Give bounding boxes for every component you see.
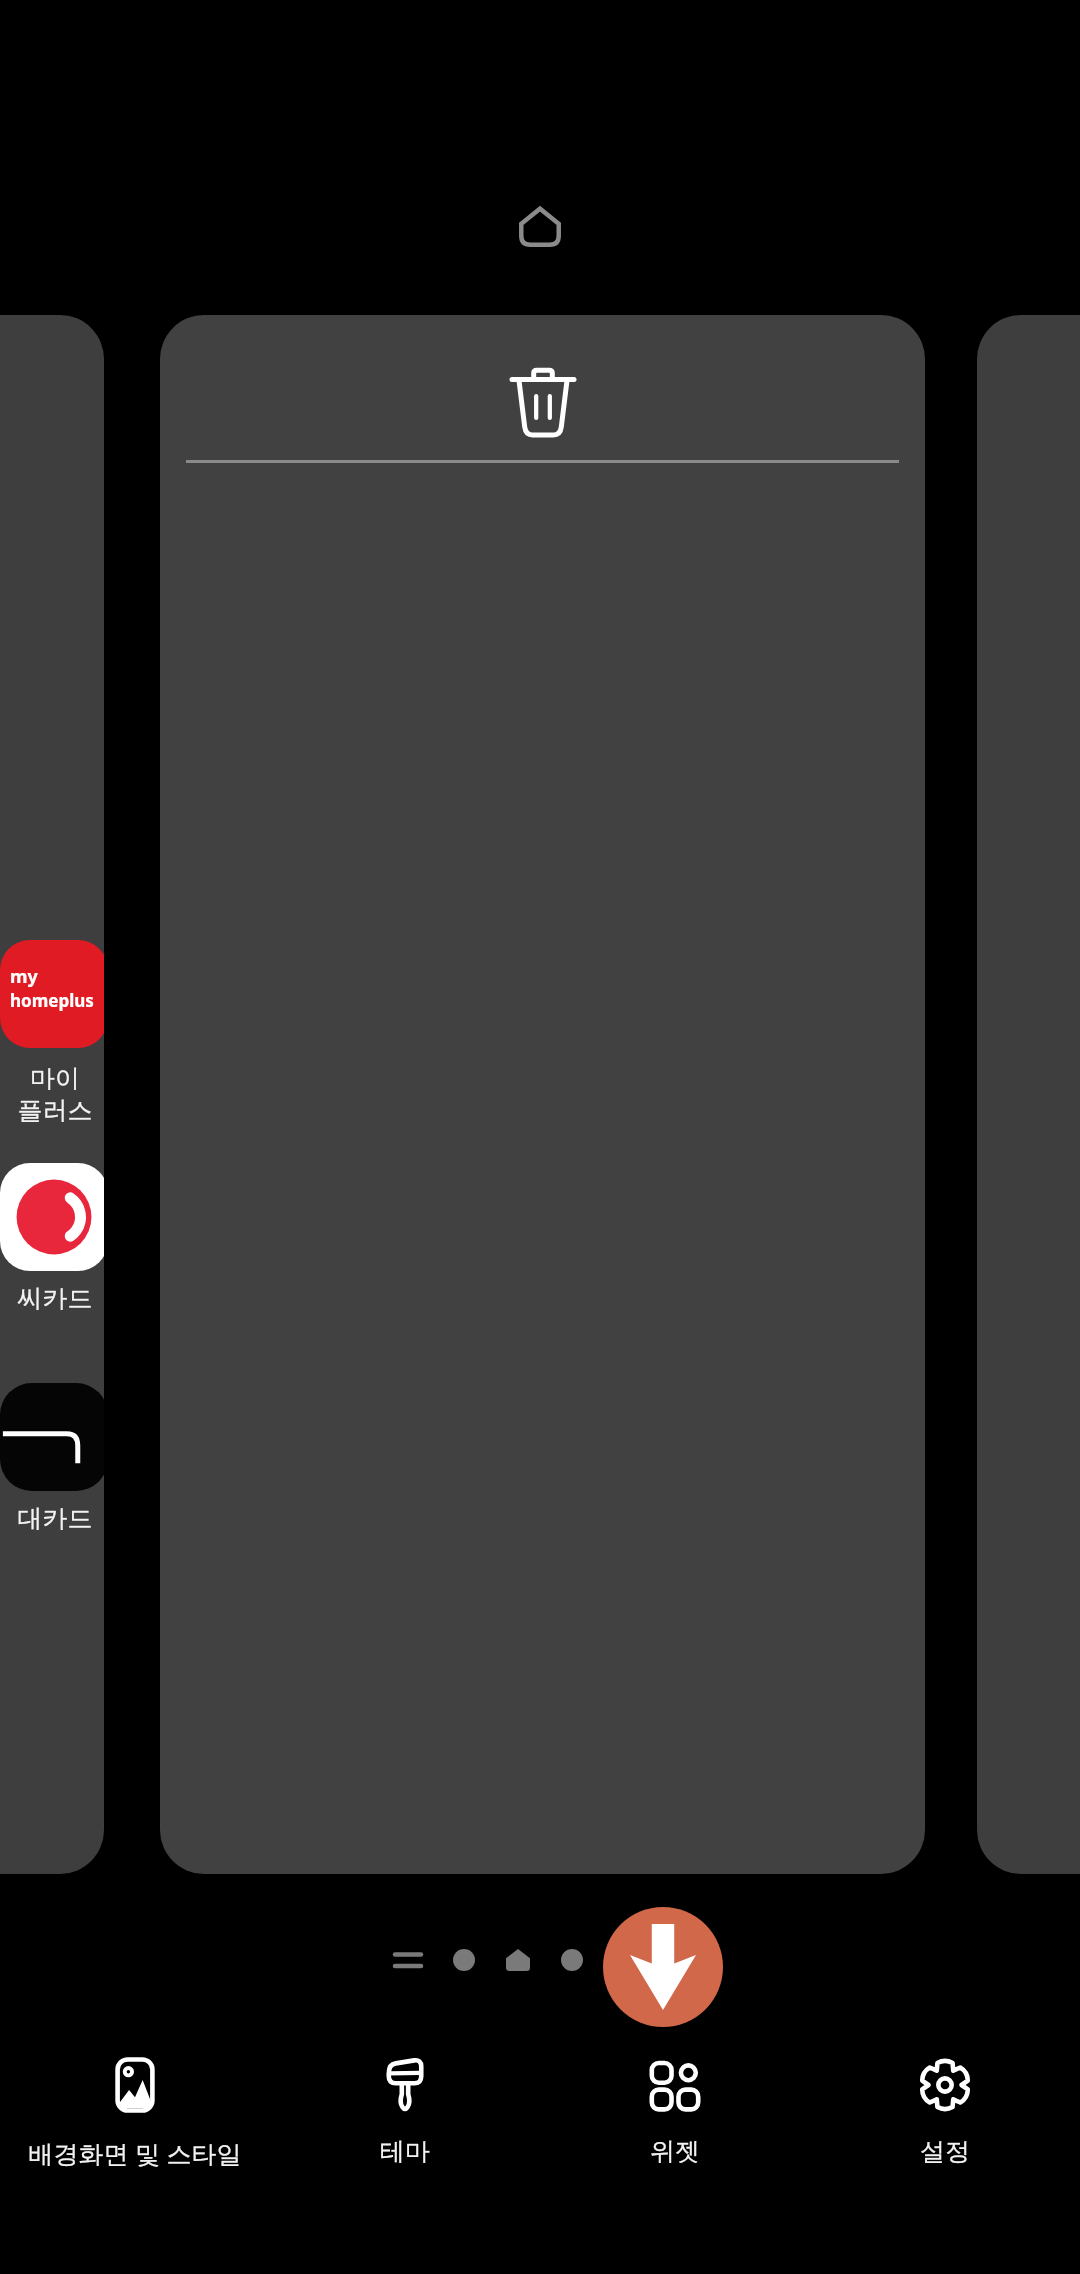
button[interactable]: Home page (496, 1938, 540, 1982)
button[interactable]: All pages (386, 1938, 430, 1982)
button[interactable]: Page 3 (550, 1938, 594, 1982)
button[interactable]: Delete page (485, 345, 601, 461)
staticText: 배경화면 및 스타일 (28, 2136, 242, 2170)
button[interactable]: Widgets (540, 2048, 810, 2228)
button[interactable]: Wallpaper and style (0, 2048, 270, 2228)
staticText: homeplus (10, 989, 94, 1012)
staticText: 대카드 (2, 1503, 104, 1534)
button[interactable]: Theme (270, 2048, 540, 2228)
button[interactable] (977, 315, 1080, 1874)
button[interactable]: Home screen (504, 190, 576, 262)
button[interactable]: Add page (603, 1907, 723, 2027)
button[interactable] (0, 1163, 104, 1271)
staticText: 씨카드 (2, 1283, 104, 1314)
button[interactable]: my (0, 315, 104, 1874)
button[interactable]: my (0, 940, 104, 1048)
staticText: 테마 (380, 2136, 430, 2167)
button[interactable]: Settings (810, 2048, 1080, 2228)
staticText: 설정 (920, 2136, 970, 2167)
staticText: 마이 플러스 (2, 1063, 104, 1126)
button[interactable]: Page 1 (442, 1938, 486, 1982)
staticText: 위젯 (650, 2136, 700, 2167)
button[interactable] (0, 1383, 104, 1491)
staticText: my (10, 964, 38, 989)
